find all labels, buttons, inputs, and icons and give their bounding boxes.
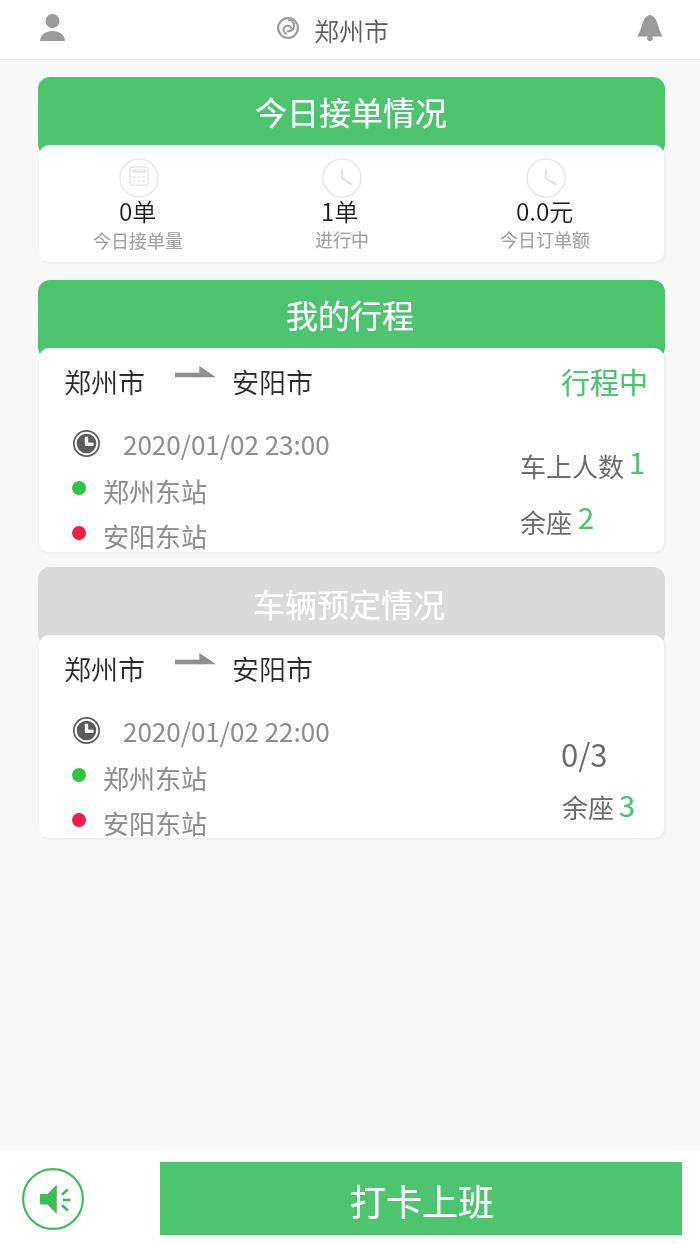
staticText: 2020/01/02 23:00 xyxy=(123,425,330,463)
button[interactable] xyxy=(39,635,664,838)
button[interactable]: Voice broadcast xyxy=(22,1168,84,1230)
staticText: 郑州市 xyxy=(64,649,145,688)
button[interactable]: 打卡上班 xyxy=(160,1162,682,1235)
staticText: 2020/01/02 22:00 xyxy=(123,712,330,750)
staticText: 今日接单情况 xyxy=(255,88,448,134)
staticText: 今日接单量 xyxy=(93,227,183,253)
staticText: 安阳东站 xyxy=(103,804,208,842)
staticText: 打卡上班 xyxy=(350,1174,495,1226)
staticText: 0.0元 xyxy=(516,193,574,228)
staticText: 1 xyxy=(629,440,646,482)
staticText: 1单 xyxy=(321,193,359,228)
staticText: 今日订单额 xyxy=(500,226,590,252)
staticText: 行程中 xyxy=(561,360,649,402)
staticText: 安阳市 xyxy=(232,362,313,401)
staticText: 我的行程 xyxy=(286,291,415,337)
staticText: 0/3 xyxy=(561,731,608,776)
staticText: 0单 xyxy=(119,193,157,228)
staticText: 车辆预定情况 xyxy=(253,580,446,626)
staticText: 安阳东站 xyxy=(103,517,208,555)
staticText: 3 xyxy=(619,783,636,825)
staticText: 2 xyxy=(578,495,595,537)
button[interactable]: Notifications xyxy=(626,4,674,52)
staticText: 郑州东站 xyxy=(103,472,208,510)
button[interactable]: Profile xyxy=(28,3,76,51)
staticText: 进行中 xyxy=(315,226,369,252)
staticText: 安阳市 xyxy=(232,649,313,688)
button[interactable] xyxy=(39,348,664,552)
staticText: 郑州东站 xyxy=(103,759,208,797)
staticText: 车上人数 xyxy=(520,447,625,485)
staticText: 余座 xyxy=(562,788,615,826)
staticText: 郑州市 xyxy=(64,362,145,401)
staticText: 郑州市 xyxy=(314,12,390,48)
staticText: 余座 xyxy=(520,503,573,541)
